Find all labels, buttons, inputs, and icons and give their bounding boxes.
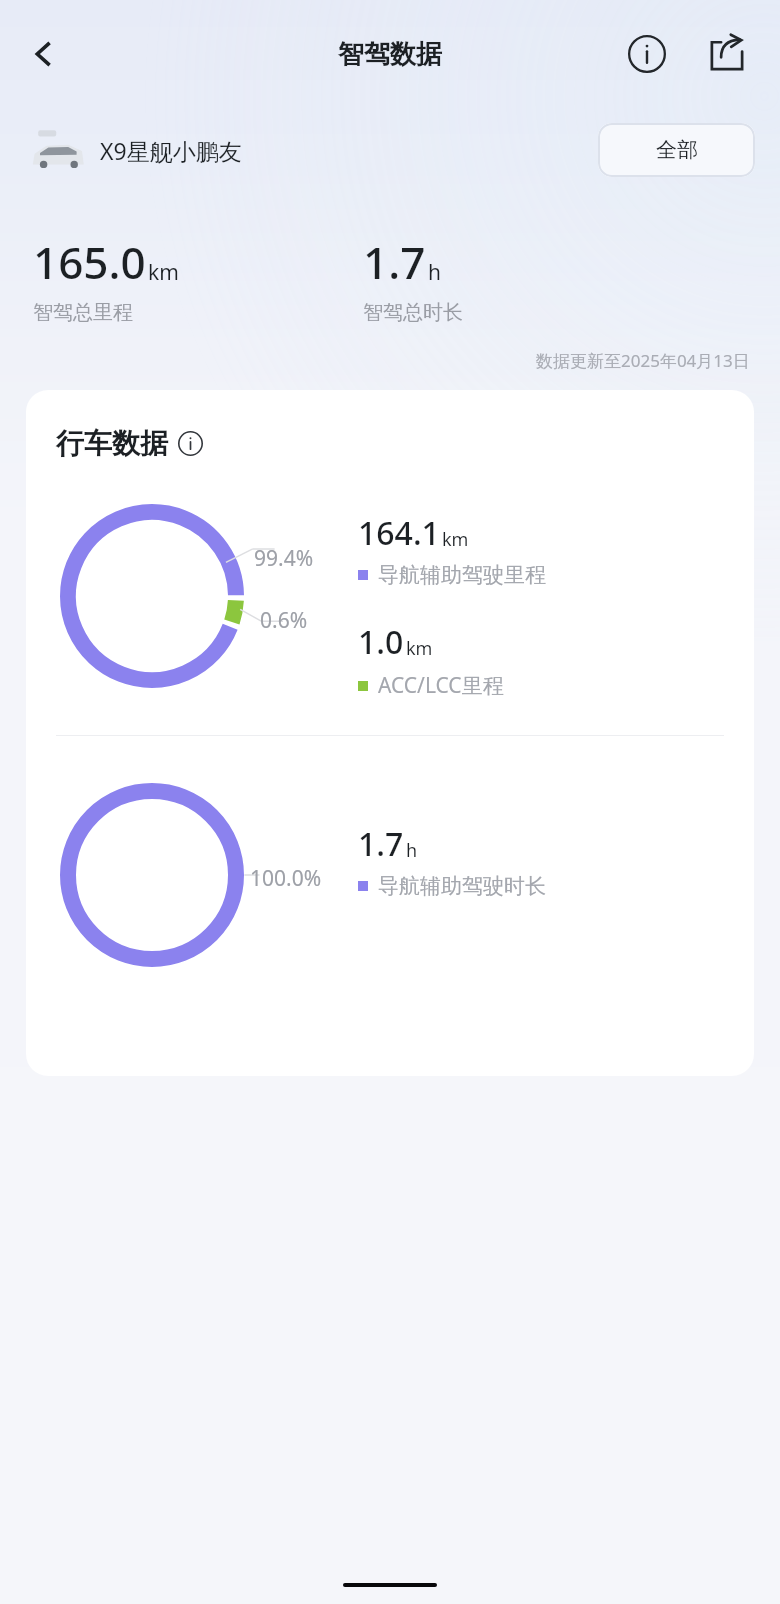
staticText: h — [406, 838, 418, 863]
staticText: 165.0 — [33, 232, 146, 292]
staticText: 1.7 — [358, 822, 404, 866]
staticText: 100.0% — [250, 864, 322, 893]
button[interactable]: Back — [14, 24, 74, 84]
staticText: h — [428, 258, 441, 287]
staticText: 1.7 — [363, 232, 426, 292]
staticText: km — [148, 258, 179, 287]
staticText: 1.0 — [358, 620, 404, 664]
button[interactable]: 全部 — [598, 123, 755, 177]
staticText: 智驾总里程 — [33, 300, 133, 325]
staticText: ACC/LCC里程 — [378, 671, 504, 700]
staticText: km — [442, 527, 469, 552]
staticText: 智驾总时长 — [363, 300, 463, 325]
staticText: 164.1 — [358, 511, 440, 555]
staticText: 智驾数据 — [338, 38, 442, 71]
button[interactable]: Share — [698, 25, 756, 83]
button[interactable]: Information — [618, 25, 676, 83]
staticText: 导航辅助驾驶时长 — [378, 873, 546, 899]
staticText: 行车数据 — [56, 426, 168, 461]
staticText: 全部 — [656, 137, 698, 163]
button[interactable]: 行车数据 — [56, 426, 203, 461]
staticText: km — [406, 636, 433, 661]
staticText: 99.4% — [254, 544, 314, 573]
staticText: 数据更新至2025年04月13日 — [536, 349, 750, 372]
staticText: 0.6% — [260, 606, 308, 635]
staticText: X9星舰小鹏友 — [100, 135, 242, 166]
staticText: 导航辅助驾驶里程 — [378, 562, 546, 588]
